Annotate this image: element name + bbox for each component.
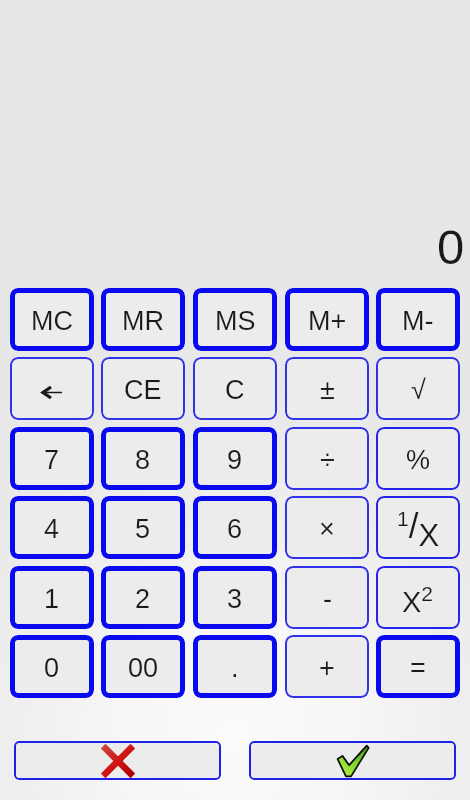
staticText: 2 <box>135 584 151 614</box>
button[interactable]: 1/x <box>376 496 460 559</box>
staticText: 0 <box>44 653 60 683</box>
button[interactable]: 7 <box>10 427 94 490</box>
staticText: MR <box>122 306 164 336</box>
staticText: - <box>323 584 332 614</box>
button[interactable]: M+ <box>285 288 369 351</box>
staticText: + <box>319 653 335 683</box>
staticText: ÷ <box>320 445 335 475</box>
staticText: M- <box>402 306 434 336</box>
button[interactable]: C <box>193 357 277 420</box>
button[interactable]: 3 <box>193 566 277 629</box>
button[interactable]: 6 <box>193 496 277 559</box>
button[interactable]: M- <box>376 288 460 351</box>
button[interactable]: Cancel <box>14 741 221 780</box>
button[interactable]: √ <box>376 357 460 420</box>
button[interactable]: ± <box>285 357 369 420</box>
button[interactable]: CE <box>101 357 185 420</box>
staticText: 6 <box>227 514 243 544</box>
button[interactable]: ← <box>10 357 94 420</box>
button[interactable]: OK <box>249 741 456 780</box>
staticText: 4 <box>44 514 60 544</box>
staticText: × <box>319 514 335 544</box>
staticText: C <box>225 375 245 405</box>
button[interactable]: MR <box>101 288 185 351</box>
staticText: MS <box>215 306 256 336</box>
staticText: √ <box>411 375 426 405</box>
button[interactable]: 0 <box>10 635 94 698</box>
staticText: ± <box>320 375 335 405</box>
button[interactable]: 1 <box>10 566 94 629</box>
button[interactable]: MC <box>10 288 94 351</box>
staticText: % <box>406 445 431 475</box>
button[interactable]: + <box>285 635 369 698</box>
button[interactable]: . <box>193 635 277 698</box>
button[interactable]: 00 <box>101 635 185 698</box>
staticText: 1 <box>44 584 60 614</box>
staticText: 5 <box>135 514 151 544</box>
staticText: 00 <box>128 653 159 683</box>
staticText: . <box>231 653 239 683</box>
staticText: MC <box>31 306 73 336</box>
button[interactable]: 2 <box>101 566 185 629</box>
button[interactable]: = <box>376 635 460 698</box>
button[interactable]: 5 <box>101 496 185 559</box>
button[interactable]: ÷ <box>285 427 369 490</box>
staticText: = <box>410 653 426 683</box>
button[interactable]: % <box>376 427 460 490</box>
staticText: 8 <box>135 445 151 475</box>
staticText: 0 <box>437 220 465 275</box>
button[interactable]: 4 <box>10 496 94 559</box>
staticText: X2 <box>402 582 434 618</box>
staticText: 3 <box>227 584 243 614</box>
staticText: M+ <box>308 306 347 336</box>
button[interactable]: × <box>285 496 369 559</box>
staticText: 9 <box>227 445 243 475</box>
button[interactable]: x² <box>376 566 460 629</box>
button[interactable]: 8 <box>101 427 185 490</box>
staticText: 1/X <box>397 506 440 552</box>
button[interactable]: MS <box>193 288 277 351</box>
button[interactable]: 9 <box>193 427 277 490</box>
staticText: 7 <box>44 445 60 475</box>
staticText: CE <box>124 375 162 405</box>
button[interactable]: - <box>285 566 369 629</box>
